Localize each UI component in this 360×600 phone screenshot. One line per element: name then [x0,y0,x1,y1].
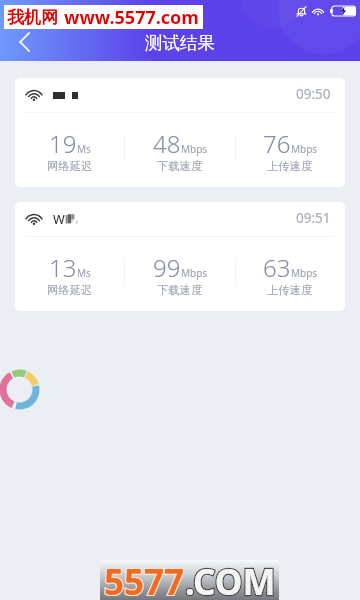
button[interactable]: W [15,202,345,311]
staticText: 测试结果 [145,32,215,54]
staticText: 下载速度 [157,159,203,173]
staticText: 5577 [104,558,185,598]
staticText: www.5577.com [64,5,199,29]
staticText: 5577 [104,558,185,598]
staticText: 63 [263,251,291,284]
staticText: Ms [77,266,91,280]
staticText: 13 [49,251,77,284]
staticText: 09:51 [296,209,331,227]
staticText: 99 [153,251,181,284]
staticText: 网络延迟 [47,283,93,297]
other: WiFi [311,6,325,16]
button[interactable]: 09:50 [15,78,345,187]
staticText: .COM [185,558,276,598]
staticText: Mbps [181,266,208,280]
staticText: .COM [185,558,276,598]
staticText: Ms [77,142,91,156]
staticText: 上传速度 [267,159,313,173]
staticText: 上传速度 [267,283,313,297]
staticText: 48 [153,127,181,160]
staticText: Mbps [291,142,318,156]
other: Notifications off [296,6,307,17]
staticText: 网络延迟 [47,159,93,173]
staticText: Mbps [291,266,318,280]
staticText: W [53,211,65,228]
staticText: 19 [49,127,77,160]
staticText: 09:50 [296,85,331,103]
other: Battery charging [330,5,356,17]
staticText: Mbps [181,142,208,156]
button[interactable]: Back [2,20,46,64]
staticText: 下载速度 [157,283,203,297]
staticText: 76 [263,127,291,160]
staticText: 我机网 [7,7,58,28]
